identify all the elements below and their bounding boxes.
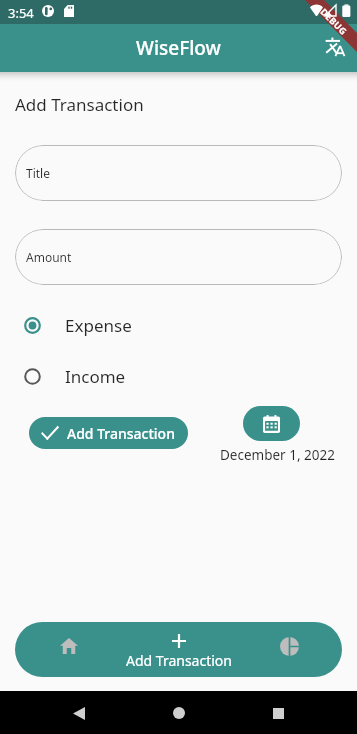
button[interactable]: Add Transaction: [29, 417, 188, 449]
button[interactable]: Amount: [15, 229, 342, 285]
button[interactable]: Expense: [0, 313, 357, 337]
button[interactable]: Recent apps: [258, 693, 298, 733]
staticText: Expense: [65, 314, 132, 337]
staticText: Amount: [26, 249, 72, 265]
staticText: Add Transaction: [15, 93, 144, 116]
button[interactable]: Statistics: [261, 622, 317, 677]
button[interactable]: Translate: [315, 28, 355, 68]
button[interactable]: Add Transaction: [84, 622, 274, 677]
staticText: DEBUG: [318, 5, 350, 37]
staticText: Title: [26, 165, 50, 181]
button[interactable]: Income: [0, 364, 357, 388]
button[interactable]: Home: [159, 693, 199, 733]
button[interactable]: Title: [15, 145, 342, 201]
staticText: December 1, 2022: [220, 446, 335, 464]
staticText: 3:54: [8, 4, 34, 22]
staticText: Add Transaction: [67, 424, 175, 443]
button[interactable]: Back: [59, 693, 99, 733]
staticText: Add Transaction: [126, 651, 232, 670]
staticText: Income: [65, 365, 126, 388]
staticText: WiseFlow: [136, 35, 221, 61]
button[interactable]: Home: [44, 622, 94, 677]
button[interactable]: Pick date: [243, 406, 300, 441]
